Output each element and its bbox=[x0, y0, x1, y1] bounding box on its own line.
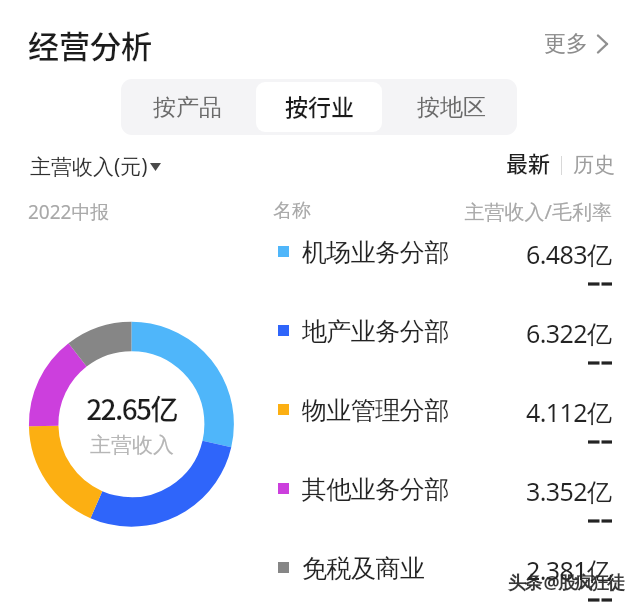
button[interactable]: 免税及商业 bbox=[278, 553, 612, 603]
button[interactable]: 其他业务分部 bbox=[278, 474, 612, 553]
button[interactable]: 历史 bbox=[571, 150, 617, 180]
staticText: 6.322亿 bbox=[526, 316, 612, 350]
staticText: 机场业务分部 bbox=[302, 237, 449, 268]
staticText: 2.381亿 bbox=[526, 553, 612, 587]
button[interactable]: 更多 bbox=[536, 24, 616, 64]
staticText: 3.352亿 bbox=[526, 474, 612, 508]
staticText: 经营分析 bbox=[28, 22, 152, 67]
staticText: 名称 bbox=[273, 199, 311, 223]
other: 更多 bbox=[597, 34, 608, 54]
staticText: 主营收入 bbox=[90, 432, 174, 458]
staticText: 按地区 bbox=[417, 93, 486, 122]
staticText: 4.112亿 bbox=[526, 395, 612, 429]
staticText: 主营收入(元) bbox=[30, 152, 148, 181]
staticText: 按行业 bbox=[285, 89, 354, 122]
staticText: 其他业务分部 bbox=[302, 474, 449, 505]
staticText: 22.65亿 bbox=[86, 388, 177, 429]
button[interactable]: 按产品 bbox=[124, 82, 250, 132]
button[interactable]: 按地区 bbox=[388, 82, 514, 132]
staticText: 更多 bbox=[544, 30, 588, 58]
button[interactable]: 地产业务分部 bbox=[278, 316, 612, 395]
button[interactable]: 按行业 bbox=[256, 82, 382, 132]
staticText: 免税及商业 bbox=[302, 553, 425, 584]
staticText: 地产业务分部 bbox=[302, 316, 449, 347]
button[interactable]: 机场业务分部 bbox=[278, 237, 612, 316]
staticText: 2022中报 bbox=[28, 199, 110, 225]
staticText: 最新 bbox=[506, 146, 551, 178]
staticText: 物业管理分部 bbox=[302, 395, 449, 426]
button[interactable]: 最新 bbox=[504, 147, 553, 183]
button[interactable]: 主营收入(元) bbox=[28, 150, 163, 183]
button[interactable]: 物业管理分部 bbox=[278, 395, 612, 474]
staticText: 头条 @股疯狂徒 bbox=[508, 570, 624, 595]
staticText: 按产品 bbox=[153, 93, 222, 122]
staticText: 历史 bbox=[573, 152, 615, 178]
staticText: 6.483亿 bbox=[526, 237, 612, 271]
staticText: 主营收入/毛利率 bbox=[412, 198, 612, 225]
